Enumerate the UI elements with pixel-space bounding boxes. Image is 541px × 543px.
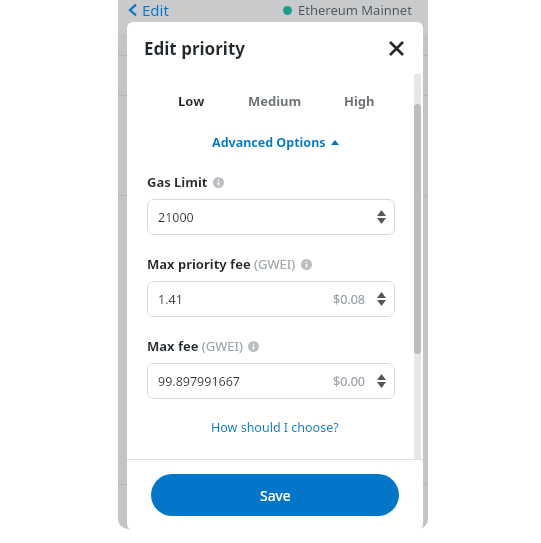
staticText: Max fee (GWEI) xyxy=(147,337,243,355)
staticText: Ethereum Mainnet xyxy=(298,1,412,19)
button[interactable]: 1.41 xyxy=(147,281,395,317)
button[interactable]: Save xyxy=(151,474,399,516)
other: Increment or decrement value xyxy=(375,209,387,225)
button[interactable]: Close xyxy=(381,33,411,63)
button[interactable]: More information xyxy=(213,177,224,188)
staticText: 99.897991667 xyxy=(158,373,241,390)
staticText: Edit xyxy=(142,0,169,20)
button[interactable]: High xyxy=(336,88,383,114)
button[interactable] xyxy=(377,218,386,224)
staticText: Gas Limit xyxy=(147,173,208,191)
button[interactable]: Medium xyxy=(240,88,310,114)
staticText: Low xyxy=(178,92,205,110)
other: Increment or decrement value xyxy=(375,373,387,389)
staticText: How should I choose? xyxy=(211,419,339,436)
button[interactable]: 99.897991667 xyxy=(147,363,395,399)
staticText: Medium xyxy=(248,92,302,110)
button[interactable]: More information xyxy=(301,259,312,270)
staticText: High xyxy=(344,92,375,110)
staticText: Advanced Options xyxy=(212,134,326,151)
button[interactable] xyxy=(377,210,386,216)
button[interactable]: Low xyxy=(170,88,213,114)
button[interactable] xyxy=(279,477,414,511)
button[interactable]: Advanced Options xyxy=(127,134,423,151)
staticText: Save xyxy=(260,486,291,505)
button[interactable]: More information xyxy=(248,341,259,352)
button[interactable] xyxy=(377,382,386,388)
other: Increment or decrement value xyxy=(375,291,387,307)
button[interactable] xyxy=(377,300,386,306)
button[interactable]: 21000 xyxy=(147,199,395,235)
button[interactable] xyxy=(377,292,386,298)
staticText: Max priority fee (GWEI) xyxy=(147,255,296,273)
button[interactable] xyxy=(377,374,386,380)
staticText: Edit priority xyxy=(144,37,245,60)
staticText: 1.41 xyxy=(158,291,183,308)
staticText: 21000 xyxy=(158,209,194,226)
staticText: $0.08 xyxy=(333,291,365,308)
button[interactable]: How should I choose? xyxy=(127,419,423,436)
staticText: $0.00 xyxy=(333,373,365,390)
button[interactable] xyxy=(132,477,267,511)
